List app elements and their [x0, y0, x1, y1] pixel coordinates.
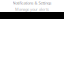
staticText: Manage your alerts [15, 6, 49, 12]
staticText: Notifications & Settings [12, 0, 51, 5]
